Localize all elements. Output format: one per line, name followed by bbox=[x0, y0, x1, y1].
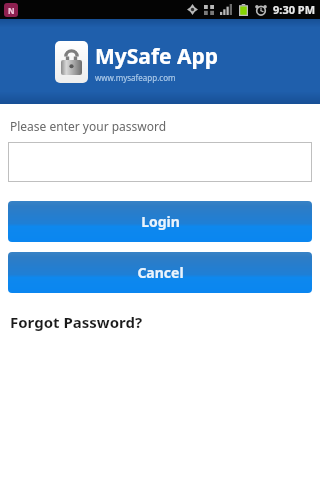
staticText: MySafe App bbox=[95, 42, 219, 71]
staticText: Cancel bbox=[137, 263, 184, 282]
staticText: 9:30 PM bbox=[273, 2, 316, 17]
staticText: www.mysafeapp.com bbox=[95, 72, 176, 83]
staticText: Forgot Password? bbox=[10, 312, 143, 332]
button[interactable]: Login bbox=[8, 201, 312, 242]
button[interactable]: Forgot Password? bbox=[10, 310, 143, 334]
button[interactable]: Cancel bbox=[8, 252, 312, 293]
staticText: Please enter your password bbox=[10, 118, 167, 134]
staticText: Login bbox=[141, 212, 180, 231]
button[interactable] bbox=[8, 142, 312, 182]
staticText: N bbox=[8, 5, 15, 16]
